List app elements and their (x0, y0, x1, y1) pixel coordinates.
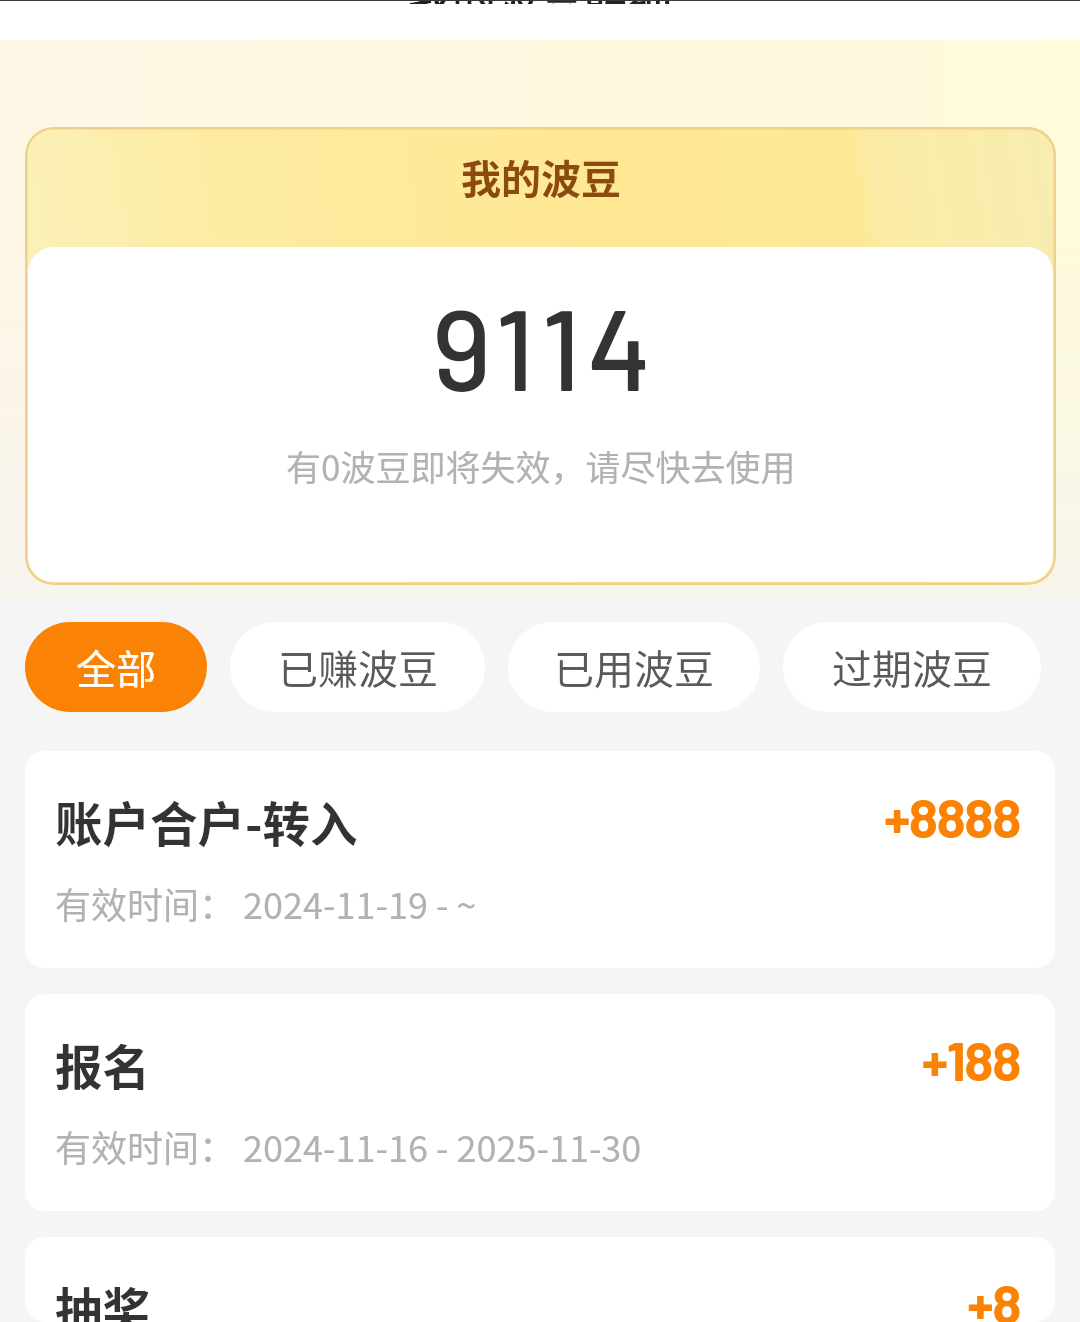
button[interactable]: 已赚波豆 (230, 622, 485, 712)
button[interactable]: 全部 (25, 622, 207, 712)
staticText: +8 (967, 1270, 1020, 1322)
staticText: 有0波豆即将失效，请尽快去使用 (286, 440, 796, 491)
staticText: 已用波豆 (554, 638, 714, 696)
staticText: 过期波豆 (832, 638, 992, 696)
button[interactable]: 报名 (25, 994, 1055, 1211)
staticText: 已赚波豆 (278, 638, 438, 696)
staticText: 我的波豆 (461, 148, 621, 206)
button[interactable]: 抽奖 (25, 1237, 1055, 1322)
button[interactable]: 已用波豆 (508, 622, 760, 712)
staticText: +8888 (883, 784, 1020, 849)
staticText: 有效时间： 2024-11-19 - ~ (55, 877, 477, 929)
button[interactable]: 账户合户-转入 (25, 751, 1055, 968)
staticText: 报名 (55, 1030, 150, 1099)
staticText: +188 (921, 1027, 1020, 1092)
staticText: 9114 (432, 278, 658, 414)
staticText: 有效时间： 2024-11-16 - 2025-11-30 (55, 1120, 642, 1172)
button[interactable]: 过期波豆 (783, 622, 1041, 712)
staticText: 账户合户-转入 (55, 787, 358, 856)
staticText: 抽奖 (55, 1273, 150, 1322)
staticText: 我的波豆明细 (408, 0, 672, 4)
staticText: 全部 (76, 638, 156, 696)
